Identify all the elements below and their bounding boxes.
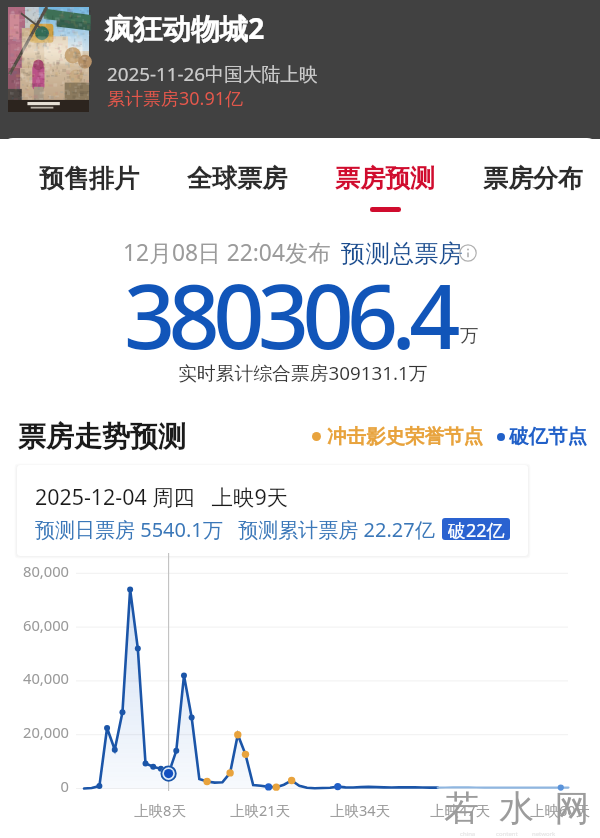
staticText: 80,000 <box>0 561 69 581</box>
staticText: 上映47天 <box>410 800 510 820</box>
staticText: 破亿节点 <box>509 424 587 449</box>
button[interactable]: 票房预测 <box>311 153 459 203</box>
staticText: 40,000 <box>0 668 69 688</box>
staticText: 上映60天 <box>510 800 600 820</box>
staticText: 上映8天 <box>110 800 210 820</box>
staticText: 0 <box>0 776 69 796</box>
staticText: 12月08日 22:04发布 <box>123 237 331 268</box>
staticText: 预测总票房 <box>341 239 463 270</box>
staticText: 票房走势预测 <box>18 419 186 454</box>
staticText: 预售排片 <box>39 163 139 194</box>
staticText: 380306.4 <box>124 253 454 375</box>
staticText: network <box>532 830 556 838</box>
staticText: 60,000 <box>0 615 69 635</box>
staticText: 票房预测 <box>335 163 435 194</box>
staticText: 全球票房 <box>187 163 287 194</box>
staticText: 破22亿 <box>448 518 505 540</box>
staticText: 万 <box>460 324 479 347</box>
button[interactable]: 全球票房 <box>163 153 311 203</box>
staticText: 若水网 <box>444 786 600 830</box>
staticText: 2025-12-04 周四 上映9天 <box>35 482 289 511</box>
staticText: content <box>496 830 518 838</box>
staticText: 实时累计综合票房309131.1万 <box>178 360 428 386</box>
staticText: 上映34天 <box>310 800 410 820</box>
staticText: 累计票房30.91亿 <box>107 86 244 111</box>
button[interactable]: 预测总票房说明 <box>457 242 479 264</box>
staticText: 2025-11-26中国大陆上映 <box>107 61 318 87</box>
staticText: 上映21天 <box>210 800 310 820</box>
staticText: 预测日票房 5540.1万 预测累计票房 22.27亿 <box>35 516 435 543</box>
staticText: 票房分布 <box>483 163 583 194</box>
button[interactable]: 票房分布 <box>459 153 600 203</box>
button[interactable]: 预售排片 <box>15 153 163 203</box>
staticText: 冲击影史荣誉节点 <box>327 424 483 449</box>
staticText: 疯狂动物城2 <box>105 8 265 47</box>
staticText: 20,000 <box>0 722 69 742</box>
staticText: china <box>460 830 476 838</box>
